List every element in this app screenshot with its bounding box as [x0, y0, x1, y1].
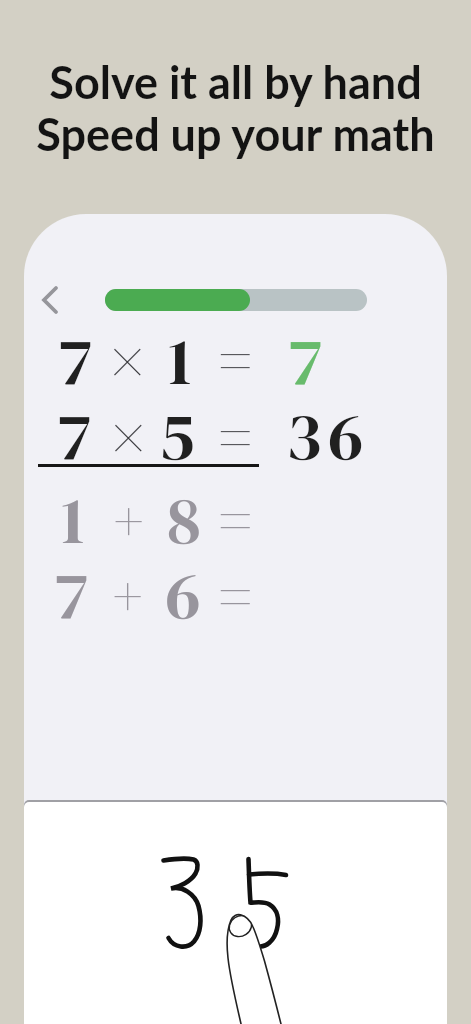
- staticText: 36: [286, 390, 370, 482]
- staticText: 1: [61, 474, 85, 566]
- staticText: 7: [55, 549, 88, 641]
- staticText: 6: [165, 549, 201, 641]
- button[interactable]: [34, 280, 68, 320]
- staticText: =: [219, 319, 252, 401]
- staticText: 1: [168, 315, 192, 407]
- staticText: =: [219, 479, 252, 561]
- staticText: ×: [111, 393, 146, 481]
- staticText: +: [114, 483, 144, 557]
- staticText: =: [219, 396, 252, 478]
- staticText: 8: [167, 474, 201, 566]
- staticText: =: [219, 555, 252, 637]
- staticText: 7: [58, 390, 91, 482]
- staticText: 5: [159, 390, 195, 482]
- staticText: ×: [110, 317, 145, 405]
- staticText: 7: [289, 315, 322, 407]
- staticText: Speed up your math: [0, 107, 471, 161]
- staticText: +: [113, 558, 143, 632]
- staticText: Solve it all by hand: [0, 55, 471, 109]
- staticText: 7: [59, 315, 92, 407]
